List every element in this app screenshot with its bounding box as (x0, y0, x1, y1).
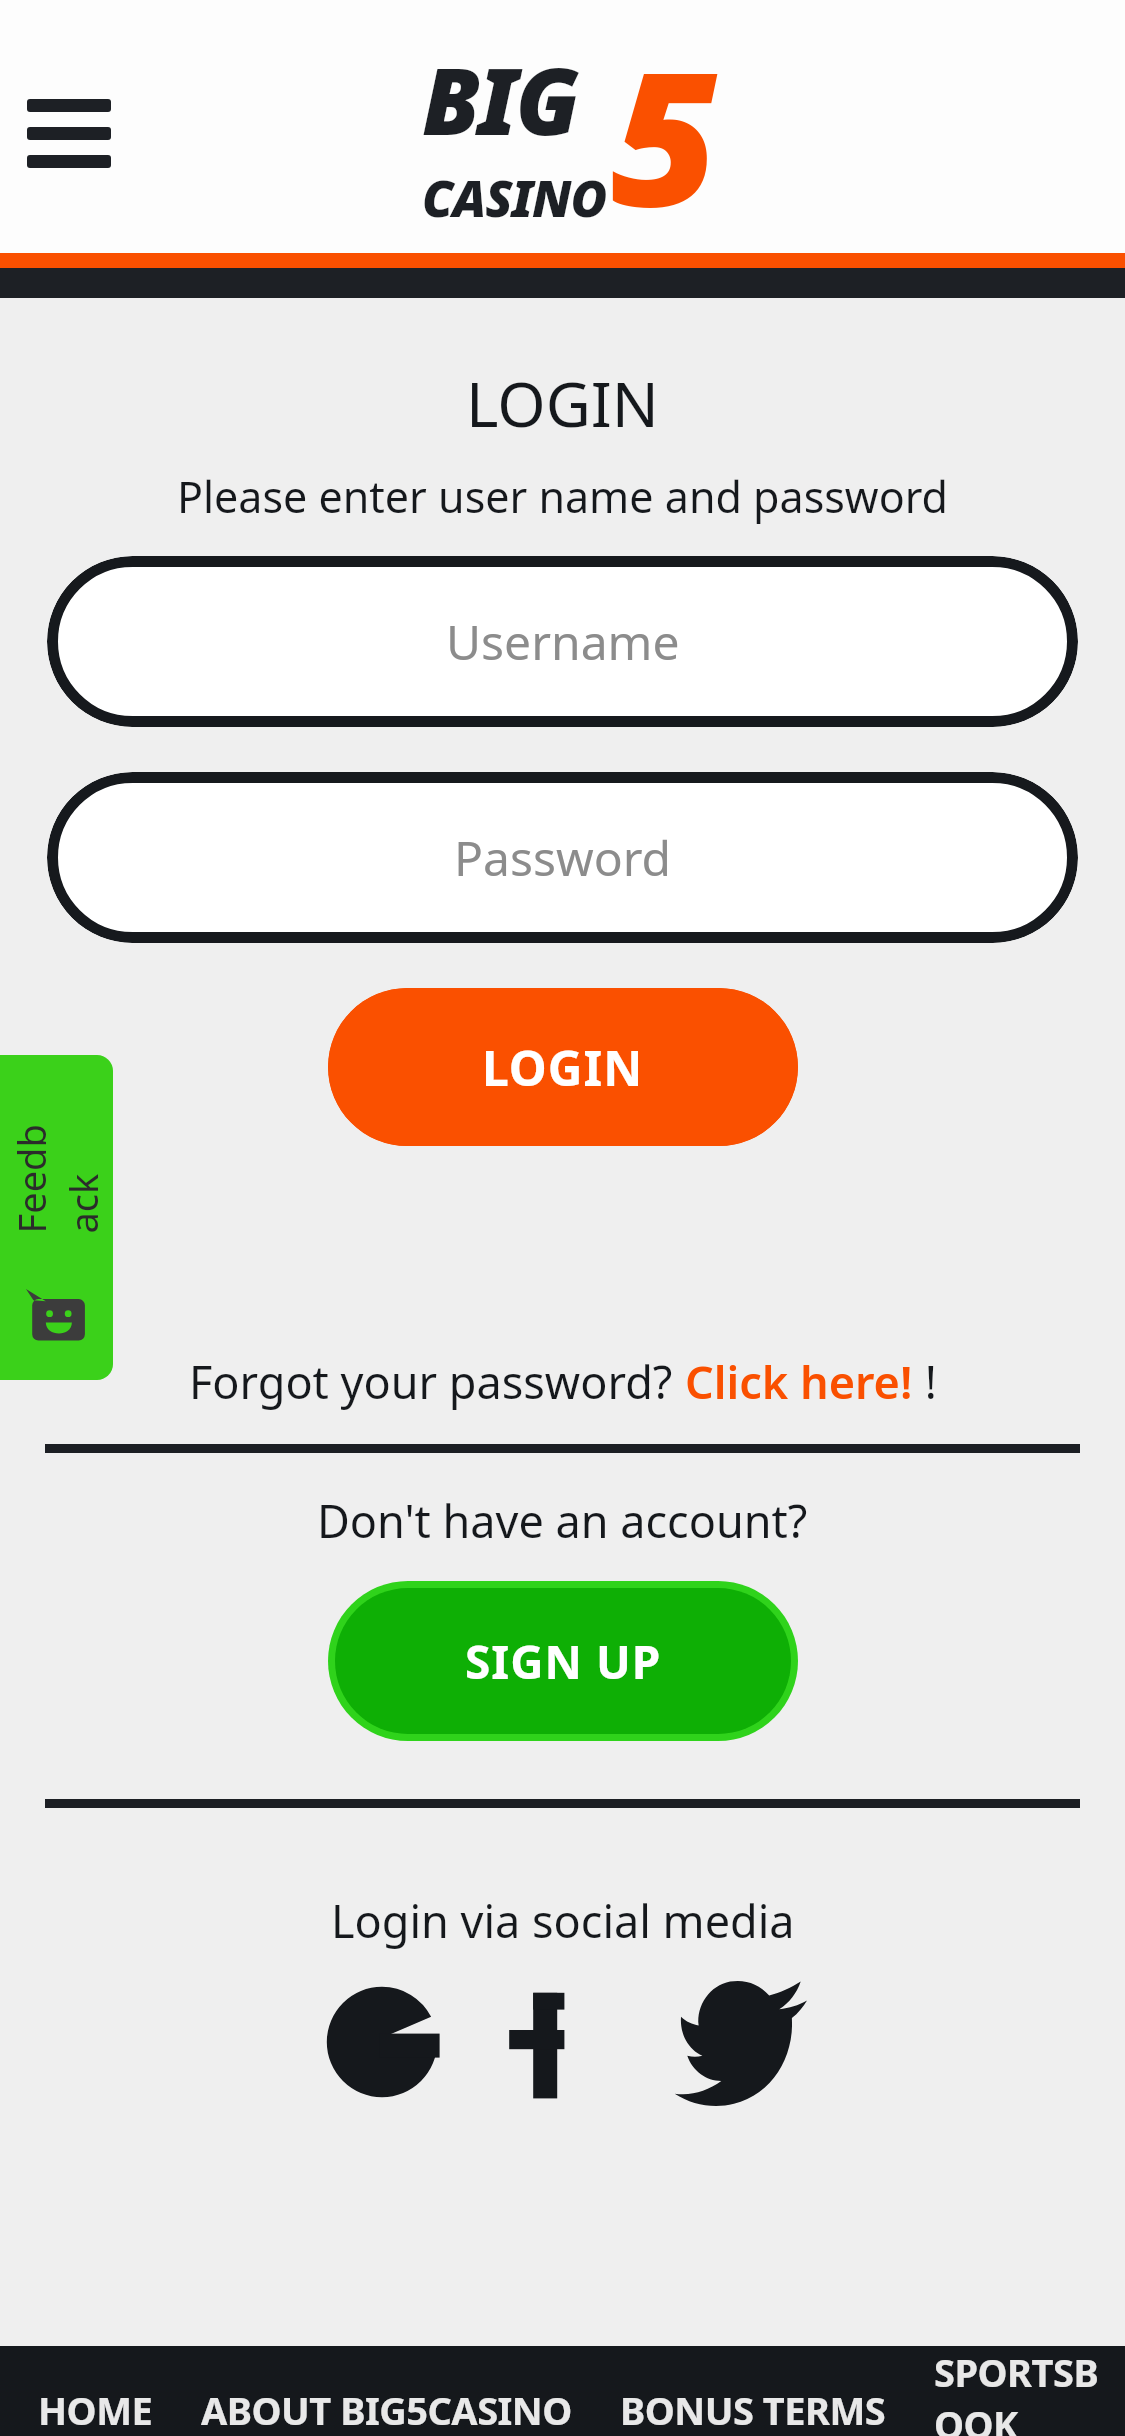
staticText: ! (913, 1351, 937, 1412)
button[interactable]: Login with Facebook (487, 1979, 613, 2105)
button[interactable]: BIG (422, 8, 719, 260)
button[interactable]: BONUS TERMS (620, 2384, 886, 2436)
staticText: Feedback (4, 1120, 108, 1233)
staticText: CASINO (422, 164, 607, 232)
button[interactable]: Password (47, 772, 1078, 943)
staticText: LOGIN (466, 361, 659, 445)
button[interactable]: Login with Google (319, 1979, 445, 2105)
staticText: Click here! (685, 1351, 913, 1412)
staticText: Please enter user name and password (177, 467, 948, 526)
button[interactable]: Click here! (685, 1351, 913, 1412)
button[interactable]: Login with Twitter (681, 1979, 807, 2105)
staticText: SIGN UP (465, 1630, 662, 1693)
staticText: Username (446, 609, 680, 674)
staticText: Login via social media (331, 1890, 795, 1951)
button[interactable]: Menu (10, 79, 128, 189)
button[interactable]: SPORTSBOOK TERMS (934, 2346, 1125, 2436)
staticText: BIG (422, 37, 578, 162)
staticText: Password (454, 825, 672, 890)
staticText: LOGIN (482, 1035, 644, 1100)
button[interactable]: ABOUT BIG5CASINO (201, 2384, 572, 2436)
button[interactable]: LOGIN (328, 988, 798, 1146)
staticText: ABOUT BIG5CASINO (201, 2384, 572, 2436)
staticText: SPORTSBOOK TERMS (934, 2346, 1125, 2436)
staticText: 5 (611, 8, 719, 260)
button[interactable]: HOME (38, 2384, 153, 2436)
staticText: Forgot your password? (189, 1351, 685, 1412)
staticText: Don't have an account? (317, 1490, 808, 1551)
staticText: BONUS TERMS (620, 2384, 886, 2436)
button[interactable]: Feedback (0, 1055, 113, 1380)
staticText: HOME (38, 2384, 153, 2436)
button[interactable]: SIGN UP (335, 1588, 791, 1734)
button[interactable]: Username (47, 556, 1078, 727)
